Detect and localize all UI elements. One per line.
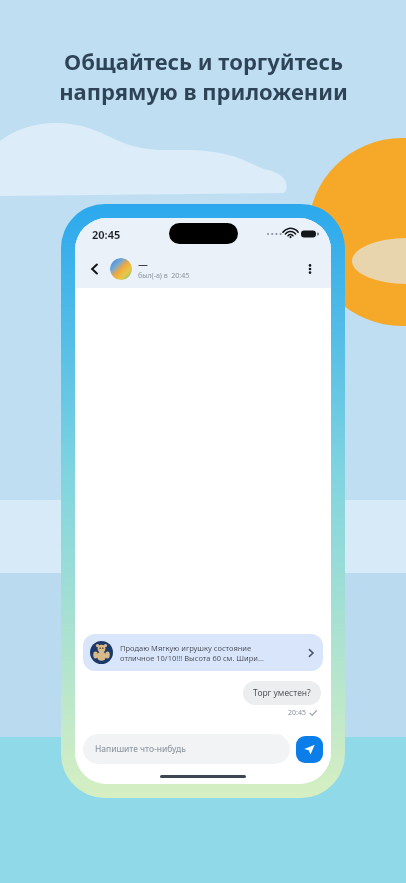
staticText: Торг уместен?: [253, 687, 311, 699]
staticText: Продаю Мягкую игрушку состояние: [120, 643, 252, 653]
staticText: отличное 10/10!!! Высота 60 см. Шири…: [120, 653, 264, 663]
button[interactable]: Торг уместен?: [243, 681, 321, 705]
staticText: Напишите что-нибудь: [95, 743, 186, 755]
button[interactable]: Profile avatar: [110, 258, 132, 280]
staticText: Общайтесь и торгуйтесь: [64, 46, 343, 76]
button[interactable]: Send message: [296, 736, 323, 763]
button[interactable]: Продаю Мягкую игрушку состояние: [83, 634, 323, 671]
button[interactable]: Напишите что-нибудь: [83, 734, 290, 764]
staticText: 20:45: [288, 708, 306, 718]
staticText: напрямую в приложении: [59, 76, 348, 106]
staticText: 20:45: [92, 227, 121, 242]
button[interactable]: More options: [299, 258, 321, 280]
staticText: —: [138, 257, 148, 271]
button[interactable]: Back: [85, 259, 105, 279]
staticText: был(-а) в 20:45: [138, 271, 190, 281]
